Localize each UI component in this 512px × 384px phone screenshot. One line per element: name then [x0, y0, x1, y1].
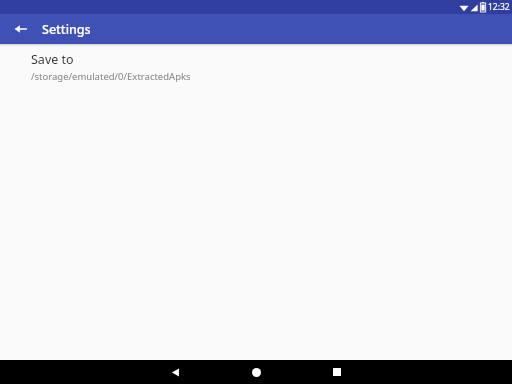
button[interactable]: Recent apps [325, 360, 349, 384]
button[interactable]: Save to [0, 47, 512, 93]
staticText: /storage/emulated/0/ExtractedApks [31, 70, 191, 83]
button[interactable]: Navigate up [6, 14, 36, 44]
staticText: Settings [42, 21, 91, 38]
staticText: 12:32 [488, 1, 510, 13]
button[interactable]: Home [244, 360, 268, 384]
staticText: Save to [31, 51, 74, 68]
button[interactable]: Back [163, 360, 187, 384]
